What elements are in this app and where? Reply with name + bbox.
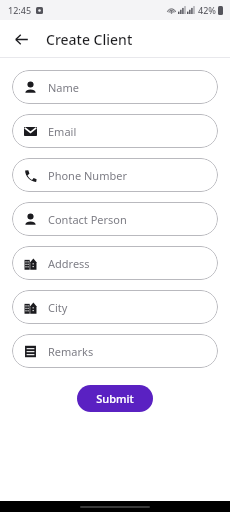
staticText: Submit bbox=[96, 391, 134, 406]
button[interactable]: Email bbox=[12, 114, 218, 148]
staticText: Contact Person bbox=[48, 212, 127, 227]
button[interactable]: Contact Person bbox=[12, 202, 218, 236]
staticText: Remarks bbox=[48, 344, 94, 359]
staticText: Name bbox=[48, 80, 80, 95]
button[interactable]: Phone Number bbox=[12, 158, 218, 192]
button[interactable]: Remarks bbox=[12, 334, 218, 368]
button[interactable]: Address bbox=[12, 246, 218, 280]
staticText: Create Client bbox=[46, 30, 133, 49]
button[interactable]: Back bbox=[8, 26, 34, 52]
button[interactable]: City bbox=[12, 290, 218, 324]
staticText: 42% bbox=[198, 4, 216, 16]
staticText: Phone Number bbox=[48, 168, 127, 183]
staticText: Address bbox=[48, 256, 90, 271]
button[interactable]: Name bbox=[12, 70, 218, 104]
staticText: City bbox=[48, 300, 68, 315]
staticText: Email bbox=[48, 124, 77, 139]
button[interactable]: Submit bbox=[77, 385, 153, 412]
staticText: 12:45 bbox=[8, 4, 32, 16]
